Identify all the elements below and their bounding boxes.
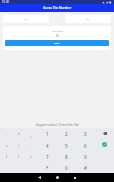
button[interactable]: 0/10 [65, 15, 111, 23]
staticText: - [6, 132, 8, 137]
button[interactable]: Backspace [95, 128, 114, 139]
button[interactable]: * [37, 162, 57, 173]
button[interactable]: 1 [37, 128, 57, 140]
button[interactable]: # [76, 162, 95, 173]
staticText: * [18, 132, 20, 137]
staticText: 50 [56, 34, 59, 38]
staticText: / [18, 143, 20, 148]
staticText: 7 [46, 154, 49, 160]
staticText: 0/10 [86, 18, 90, 20]
staticText: 2 [65, 131, 68, 137]
staticText: = [30, 154, 33, 159]
staticText: Type a number [52, 30, 63, 32]
staticText: 1-100 [24, 18, 29, 20]
staticText: Guess The Number [43, 6, 72, 10]
staticText: 3 [84, 131, 87, 137]
staticText: 4 [46, 143, 49, 149]
staticText: * [46, 165, 49, 171]
staticText: GUESS [54, 42, 60, 44]
button[interactable]: Back [30, 173, 48, 182]
button[interactable]: 2 [57, 128, 76, 140]
button[interactable]: ) [13, 151, 25, 162]
staticText: # [84, 165, 87, 171]
staticText: 10:30 [2, 0, 10, 4]
staticText: 9 [84, 154, 87, 160]
staticText: 1 [46, 131, 49, 137]
button[interactable]: 3 [76, 128, 95, 140]
staticText: + [6, 143, 9, 148]
button[interactable]: 0 [57, 162, 76, 173]
button[interactable]: 6 [76, 140, 95, 151]
button[interactable]: 7 [37, 151, 57, 162]
button[interactable]: ( [1, 151, 13, 162]
staticText: . [31, 143, 32, 148]
staticText: 5 [65, 143, 68, 149]
staticText: 8 [65, 154, 68, 160]
button[interactable]: 9 [76, 151, 95, 162]
staticText: 0 [65, 165, 68, 171]
staticText: ) [18, 154, 20, 159]
button[interactable]: GUESS [5, 40, 109, 46]
button[interactable]: * [13, 128, 25, 140]
button[interactable]: + [1, 140, 13, 151]
staticText: Suggest contact / Search For Site [36, 123, 79, 127]
button[interactable]: 5 [57, 140, 76, 151]
button[interactable]: 8 [57, 151, 76, 162]
staticText: ( [6, 154, 8, 159]
button[interactable]: Recents [66, 173, 84, 182]
button[interactable]: / [13, 140, 25, 151]
button[interactable]: 1-100 [3, 15, 49, 23]
button[interactable]: Enter [95, 139, 114, 150]
staticText: , [31, 132, 32, 137]
button[interactable]: = [25, 151, 37, 162]
button[interactable]: Home [48, 173, 66, 182]
staticText: 6 [84, 143, 87, 149]
button[interactable]: , [25, 128, 37, 140]
button[interactable]: 4 [37, 140, 57, 151]
